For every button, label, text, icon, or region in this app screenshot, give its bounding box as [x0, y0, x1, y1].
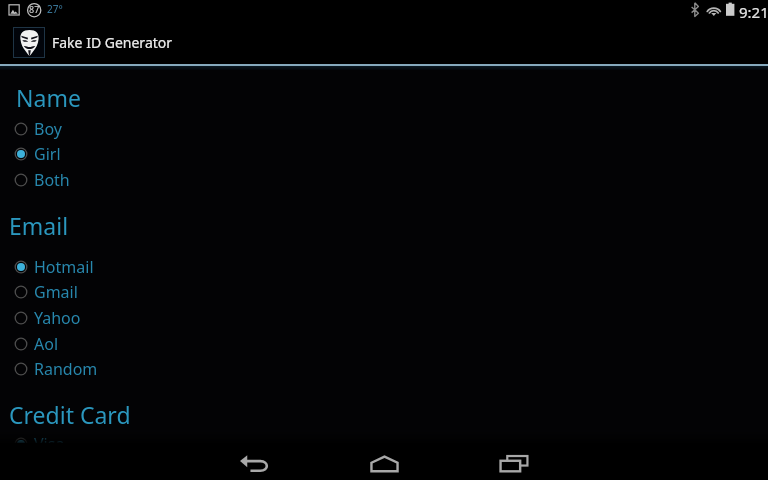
staticText: 27°	[47, 2, 63, 16]
staticText: 9:21	[739, 2, 768, 22]
staticText: Yahoo	[34, 307, 81, 329]
staticText: Both	[34, 169, 70, 191]
button[interactable]: Aol	[0, 329, 768, 354]
button[interactable]: Both	[0, 165, 768, 190]
button[interactable]: Random	[0, 354, 768, 379]
staticText: Gmail	[34, 281, 78, 303]
other: App icon	[13, 27, 45, 58]
staticText: Email	[9, 210, 69, 241]
staticText: Credit Card	[9, 399, 131, 430]
button[interactable]: Hotmail	[0, 252, 768, 277]
staticText: Name	[16, 82, 81, 113]
button[interactable]: Back	[214, 445, 294, 480]
staticText: Aol	[34, 333, 59, 355]
staticText: 87	[29, 3, 40, 15]
staticText: Hotmail	[34, 256, 94, 278]
button[interactable]: Home	[344, 445, 424, 480]
button[interactable]: Boy	[0, 114, 768, 139]
staticText: Random	[34, 358, 98, 380]
staticText: Fake ID Generator	[52, 33, 173, 52]
staticText: Girl	[34, 143, 61, 165]
staticText: Visa	[34, 433, 65, 443]
button[interactable]: Yahoo	[0, 303, 768, 328]
button[interactable]: Girl	[0, 139, 768, 164]
button[interactable]: Gmail	[0, 277, 768, 302]
button[interactable]: Recent apps	[474, 445, 554, 480]
button[interactable]: App icon	[0, 25, 768, 64]
staticText: Boy	[34, 118, 62, 140]
